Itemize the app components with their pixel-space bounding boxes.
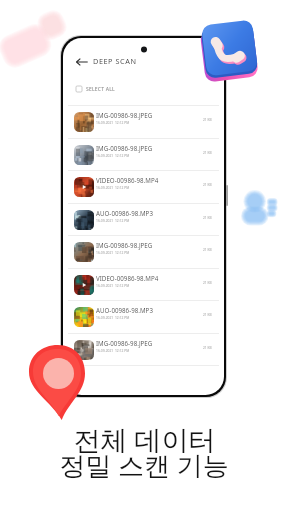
button[interactable]: SELECT ALL (76, 80, 224, 98)
staticText: IMG-00986-98.JPEG (96, 111, 153, 119)
staticText: 21 KB (203, 183, 212, 187)
staticText: 21 KB (203, 248, 212, 252)
staticText: 16-09-2021 12:12 PM (96, 218, 130, 222)
staticText: 21 KB (203, 281, 212, 285)
staticText: 21 KB (203, 151, 212, 155)
staticText: 16-09-2021 12:12 PM (96, 283, 130, 287)
button[interactable]: IMG-00986-98.JPEG (74, 236, 212, 268)
button[interactable]: VIDEO-00986-98.MP4 (74, 269, 212, 301)
button[interactable]: AUO-00986-98.MP3 (74, 301, 212, 333)
other: Location (22, 340, 98, 430)
other: Phone app (190, 10, 280, 92)
staticText: 16-09-2021 12:12 PM (96, 250, 130, 254)
button[interactable]: VIDEO-00986-98.MP4 (74, 171, 212, 203)
staticText: 16-09-2021 12:12 PM (96, 185, 130, 189)
staticText: IMG-00986-98.JPEG (96, 339, 153, 347)
button[interactable]: Back (76, 56, 88, 68)
staticText: 정밀 스캔 기능 (59, 447, 229, 483)
staticText: 21 KB (203, 313, 212, 317)
staticText: VIDEO-00986-98.MP4 (96, 176, 159, 184)
staticText: IMG-00986-98.JPEG (96, 241, 153, 249)
button[interactable]: IMG-00986-98.JPEG (74, 106, 212, 138)
staticText: 전체 데이터 (73, 421, 216, 458)
staticText: 21 KB (203, 216, 212, 220)
staticText: SELECT ALL (86, 86, 115, 93)
button[interactable]: IMG-00986-98.JPEG (74, 334, 212, 366)
button[interactable]: IMG-00986-98.JPEG (74, 139, 212, 171)
staticText: 16-09-2021 12:12 PM (96, 153, 130, 157)
staticText: 21 KB (203, 118, 212, 122)
staticText: VIDEO-00986-98.MP4 (96, 274, 159, 282)
staticText: 16-09-2021 12:12 PM (96, 120, 130, 124)
staticText: 16-09-2021 12:12 PM (96, 348, 130, 352)
staticText: IMG-00986-98.JPEG (96, 144, 153, 152)
staticText: DEEP SCAN (93, 56, 137, 66)
staticText: AUO-00986-98.MP3 (96, 306, 153, 314)
staticText: AUO-00986-98.MP3 (96, 209, 153, 217)
button[interactable]: AUO-00986-98.MP3 (74, 204, 212, 236)
staticText: 16-09-2021 12:12 PM (96, 315, 130, 319)
staticText: 21 KB (203, 346, 212, 350)
